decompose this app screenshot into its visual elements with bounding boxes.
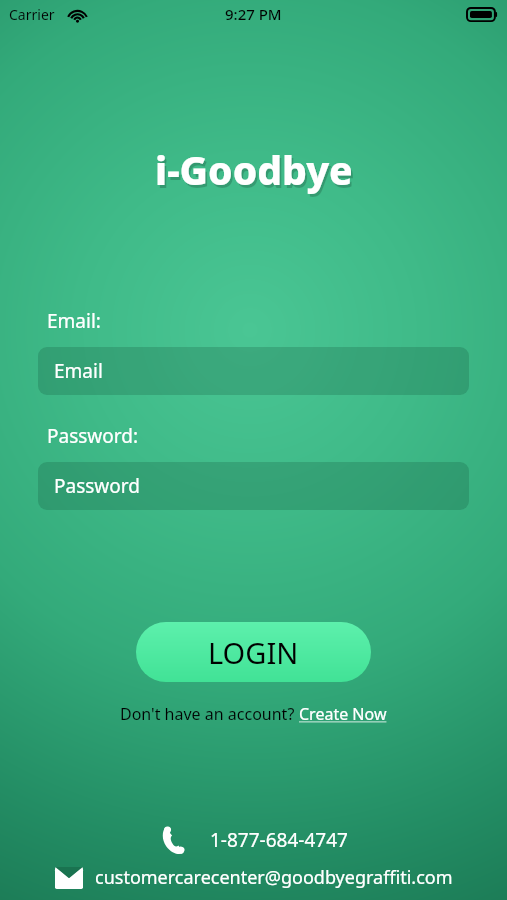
staticText: Email:	[47, 308, 101, 334]
staticText: customercarecenter@goodbyegraffiti.com	[95, 865, 453, 890]
other: Email	[55, 867, 83, 889]
staticText: i-Goodbye	[157, 146, 355, 199]
staticText: i-Goodbye	[155, 143, 353, 196]
staticText: Don't have an account?	[120, 703, 299, 725]
staticText: Password:	[47, 423, 139, 449]
staticText: Create Now	[299, 703, 387, 725]
staticText: Password	[54, 473, 140, 499]
other: Call	[160, 826, 188, 854]
button[interactable]: Email	[49, 861, 459, 894]
button[interactable]: LOGIN	[136, 622, 371, 682]
button[interactable]: Call	[154, 822, 354, 858]
button[interactable]: Create Now	[299, 703, 387, 725]
button[interactable]: Email	[38, 347, 469, 395]
button[interactable]: Password	[38, 462, 469, 510]
staticText: 1-877-684-4747	[210, 827, 348, 853]
staticText: LOGIN	[208, 633, 299, 672]
staticText: Email	[54, 358, 103, 384]
staticText: 9:27 PM	[225, 4, 282, 24]
staticText: Carrier	[9, 5, 55, 24]
